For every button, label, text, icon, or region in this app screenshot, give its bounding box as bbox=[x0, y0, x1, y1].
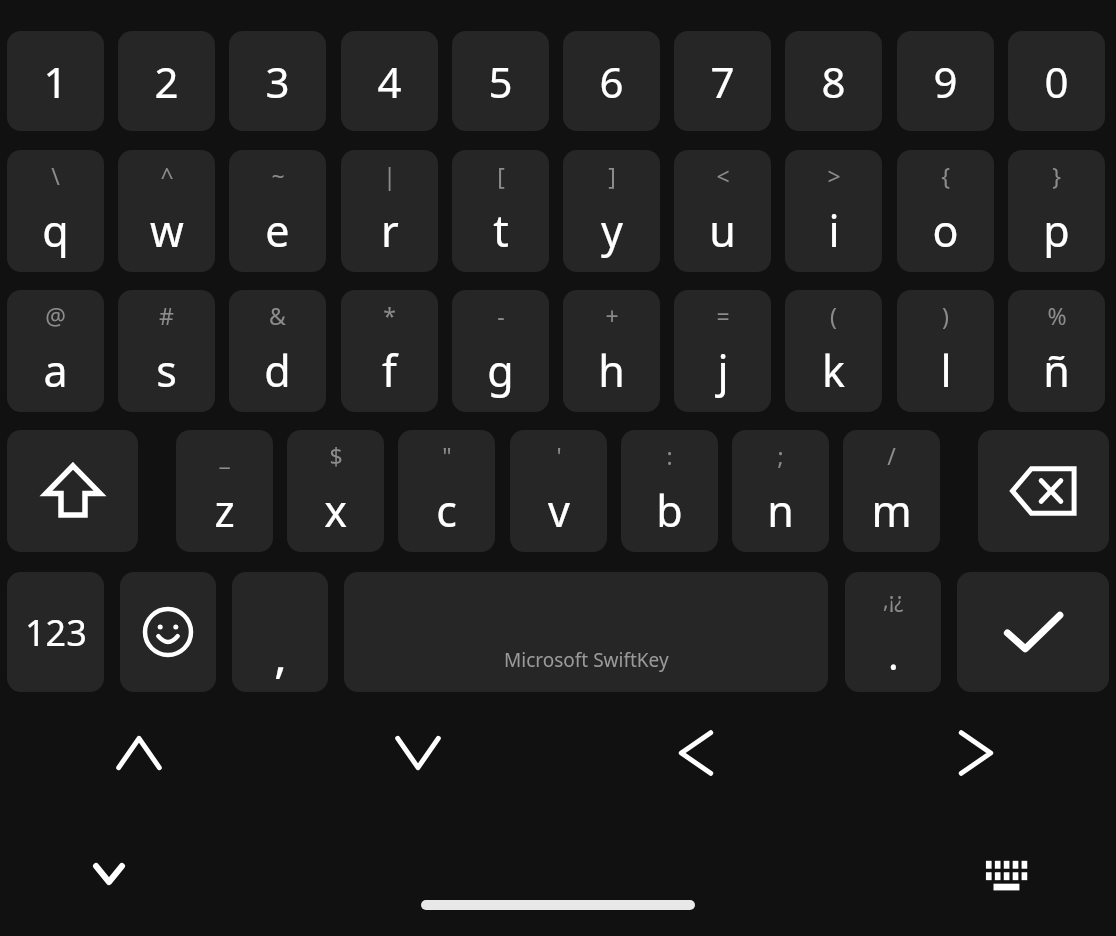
button[interactable]: _ bbox=[176, 430, 273, 552]
staticText: j bbox=[717, 341, 729, 400]
staticText: 7 bbox=[710, 53, 735, 110]
staticText: v bbox=[548, 481, 570, 540]
button[interactable]: = bbox=[674, 290, 771, 412]
button[interactable]: ) bbox=[897, 290, 994, 412]
button[interactable]: 2 bbox=[118, 31, 215, 131]
button[interactable]: 0 bbox=[1008, 31, 1105, 131]
staticText: ; bbox=[777, 440, 784, 471]
button[interactable]: * bbox=[341, 290, 438, 412]
button[interactable]: ] bbox=[563, 150, 660, 272]
button[interactable]: Period bbox=[845, 572, 941, 692]
staticText: - bbox=[497, 300, 505, 331]
button[interactable]: Emoji bbox=[120, 572, 216, 692]
button[interactable]: Move down bbox=[383, 718, 453, 788]
staticText: k bbox=[822, 341, 845, 400]
button[interactable]: ^ bbox=[118, 150, 215, 272]
button[interactable]: 7 bbox=[674, 31, 771, 131]
button[interactable]: 3 bbox=[229, 31, 326, 131]
staticText: _ bbox=[219, 440, 230, 471]
staticText: 4 bbox=[377, 53, 402, 110]
button[interactable]: Comma bbox=[232, 572, 328, 692]
staticText: / bbox=[887, 440, 896, 471]
staticText: y bbox=[601, 201, 623, 260]
staticText: " bbox=[442, 440, 452, 471]
staticText: u bbox=[709, 201, 736, 260]
staticText: ' bbox=[556, 440, 562, 471]
staticText: ( bbox=[830, 300, 837, 331]
staticText: * bbox=[383, 300, 396, 331]
staticText: s bbox=[156, 341, 177, 400]
button[interactable]: ' bbox=[510, 430, 607, 552]
staticText: q bbox=[42, 201, 69, 260]
button[interactable]: / bbox=[843, 430, 940, 552]
button[interactable]: % bbox=[1008, 290, 1105, 412]
button[interactable]: [ bbox=[452, 150, 549, 272]
button[interactable]: | bbox=[341, 150, 438, 272]
staticText: 2 bbox=[154, 53, 179, 110]
button[interactable]: } bbox=[1008, 150, 1105, 272]
button[interactable]: : bbox=[621, 430, 718, 552]
button[interactable]: - bbox=[452, 290, 549, 412]
staticText: = bbox=[716, 300, 730, 331]
button[interactable]: Move right bbox=[941, 718, 1011, 788]
staticText: @ bbox=[45, 300, 66, 331]
button[interactable]: Numbers and symbols bbox=[7, 572, 104, 692]
button[interactable]: 9 bbox=[897, 31, 994, 131]
button[interactable]: < bbox=[674, 150, 771, 272]
button[interactable]: Space bbox=[344, 572, 828, 692]
button[interactable]: Hide keyboard bbox=[82, 848, 136, 900]
button[interactable]: ~ bbox=[229, 150, 326, 272]
button[interactable]: > bbox=[785, 150, 882, 272]
staticText: 5 bbox=[488, 53, 513, 110]
staticText: : bbox=[666, 440, 673, 471]
button[interactable]: Move up bbox=[104, 718, 174, 788]
staticText: 9 bbox=[933, 53, 958, 110]
staticText: 3 bbox=[265, 53, 290, 110]
staticText: ñ bbox=[1043, 341, 1070, 400]
button[interactable]: 6 bbox=[563, 31, 660, 131]
staticText: \ bbox=[51, 160, 60, 191]
button[interactable]: Enter bbox=[957, 572, 1109, 692]
staticText: { bbox=[941, 160, 950, 191]
staticText: o bbox=[932, 201, 959, 260]
staticText: f bbox=[382, 341, 397, 400]
staticText: g bbox=[487, 341, 514, 400]
button[interactable]: $ bbox=[287, 430, 384, 552]
staticText: 8 bbox=[821, 53, 846, 110]
button[interactable]: @ bbox=[7, 290, 104, 412]
staticText: $ bbox=[329, 440, 343, 471]
staticText: 1 bbox=[43, 53, 68, 110]
button[interactable]: 1 bbox=[7, 31, 104, 131]
button[interactable]: + bbox=[563, 290, 660, 412]
staticText: [ bbox=[497, 160, 505, 191]
staticText: ^ bbox=[160, 160, 174, 191]
staticText: + bbox=[605, 300, 619, 331]
button[interactable]: ( bbox=[785, 290, 882, 412]
staticText: , bbox=[274, 622, 287, 687]
staticText: % bbox=[1047, 300, 1067, 331]
button[interactable]: 4 bbox=[341, 31, 438, 131]
button[interactable]: { bbox=[897, 150, 994, 272]
button[interactable]: ; bbox=[732, 430, 829, 552]
button[interactable]: " bbox=[398, 430, 495, 552]
staticText: c bbox=[436, 481, 457, 540]
button[interactable]: # bbox=[118, 290, 215, 412]
staticText: d bbox=[264, 341, 291, 400]
staticText: ) bbox=[942, 300, 949, 331]
staticText: l bbox=[940, 341, 952, 400]
button[interactable]: Switch input method bbox=[980, 852, 1034, 896]
staticText: 123 bbox=[25, 608, 87, 657]
staticText: a bbox=[43, 341, 68, 400]
button[interactable]: \ bbox=[7, 150, 104, 272]
button[interactable]: Backspace bbox=[978, 430, 1109, 552]
button[interactable]: 5 bbox=[452, 31, 549, 131]
staticText: n bbox=[767, 481, 794, 540]
staticText: | bbox=[383, 160, 396, 191]
staticText: x bbox=[324, 481, 347, 540]
button[interactable]: Move left bbox=[661, 718, 731, 788]
staticText: h bbox=[598, 341, 625, 400]
staticText: Microsoft SwiftKey bbox=[504, 647, 669, 673]
button[interactable]: & bbox=[229, 290, 326, 412]
button[interactable]: Shift bbox=[7, 430, 138, 552]
button[interactable]: 8 bbox=[785, 31, 882, 131]
